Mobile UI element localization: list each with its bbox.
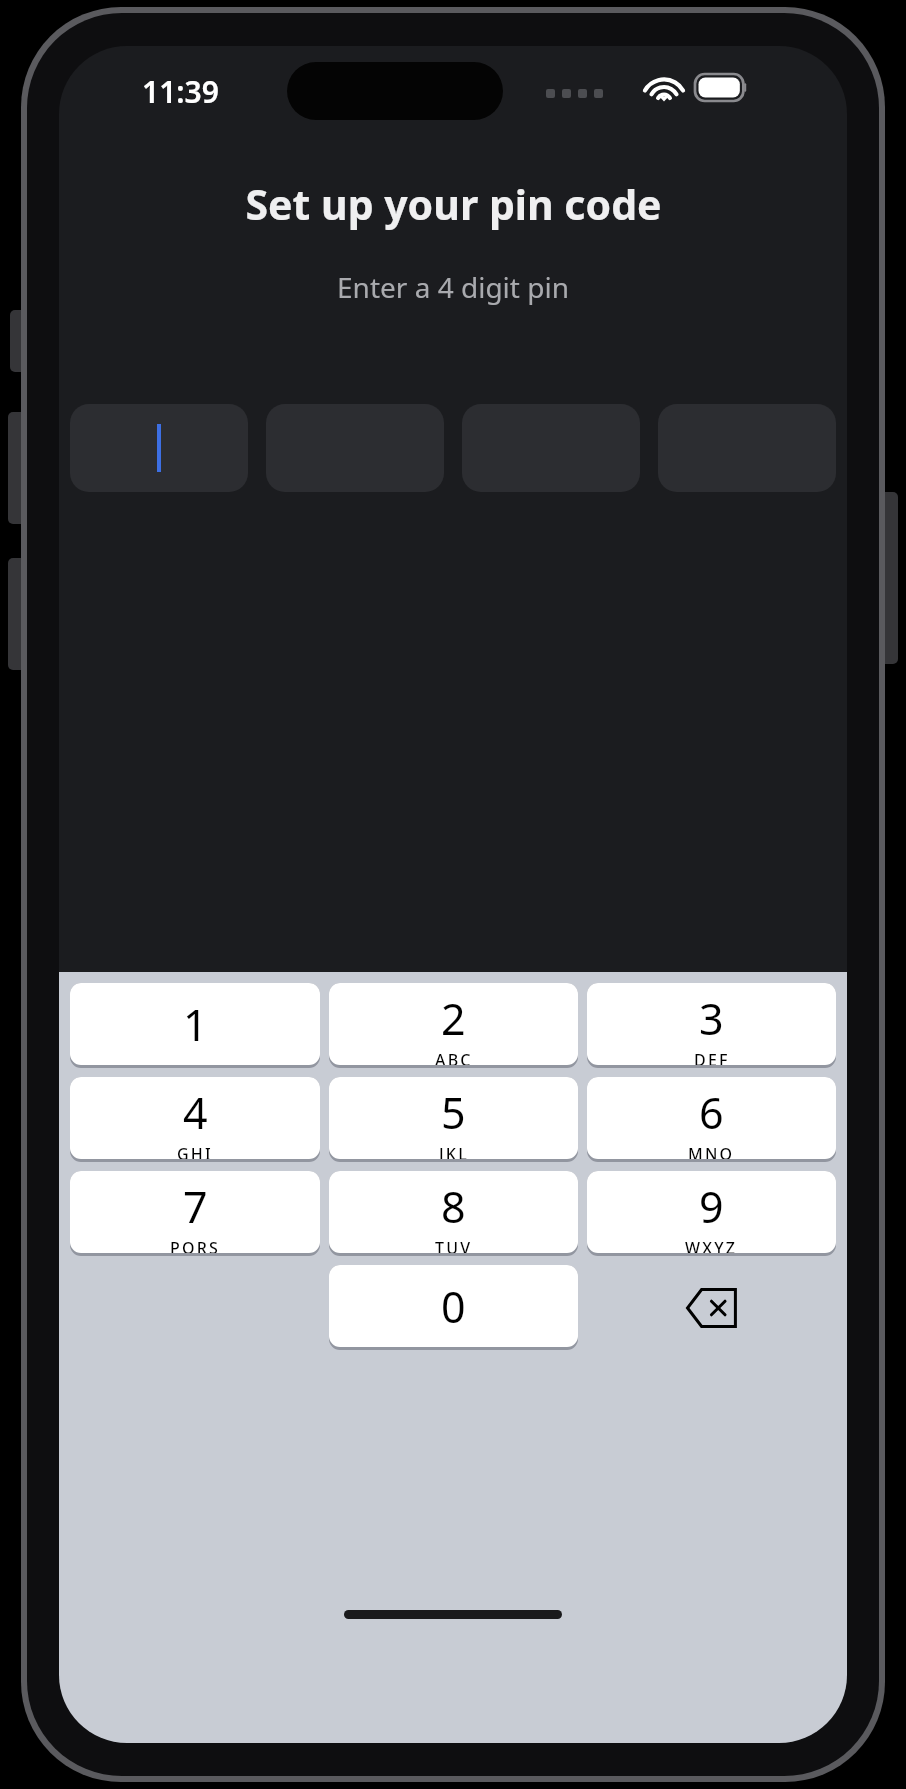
button[interactable]: Backspace	[587, 1265, 836, 1350]
staticText: 6	[699, 1083, 724, 1142]
staticText: PQRS	[170, 1237, 221, 1253]
staticText: GHI	[177, 1143, 213, 1159]
button[interactable]: 4	[70, 1077, 320, 1159]
staticText: 3	[699, 989, 724, 1048]
button[interactable]: 3	[587, 983, 836, 1065]
button[interactable]: 6	[587, 1077, 836, 1159]
staticText: 9	[699, 1177, 724, 1236]
button[interactable]: 7	[70, 1171, 320, 1253]
staticText: 11:39	[142, 71, 219, 112]
button[interactable]: 0	[329, 1265, 578, 1347]
staticText: 5	[441, 1083, 466, 1142]
staticText: MNO	[688, 1143, 735, 1159]
button[interactable]	[70, 404, 248, 492]
staticText: 1	[183, 995, 208, 1054]
staticText: JKL	[439, 1143, 469, 1159]
staticText: 8	[441, 1177, 466, 1236]
button[interactable]: 8	[329, 1171, 578, 1253]
staticText: 7	[183, 1177, 208, 1236]
staticText: Enter a 4 digit pin	[337, 268, 569, 306]
staticText: DEF	[694, 1049, 730, 1065]
staticText: WXYZ	[685, 1237, 738, 1253]
staticText: 2	[441, 989, 466, 1048]
staticText: 0	[441, 1277, 466, 1336]
button[interactable]: 2	[329, 983, 578, 1065]
button[interactable]: 5	[329, 1077, 578, 1159]
staticText: Set up your pin code	[245, 176, 662, 232]
staticText: TUV	[435, 1237, 473, 1253]
staticText: 4	[183, 1083, 208, 1142]
button[interactable]: 9	[587, 1171, 836, 1253]
button[interactable]: 1	[70, 983, 320, 1065]
staticText: ABC	[435, 1049, 473, 1065]
